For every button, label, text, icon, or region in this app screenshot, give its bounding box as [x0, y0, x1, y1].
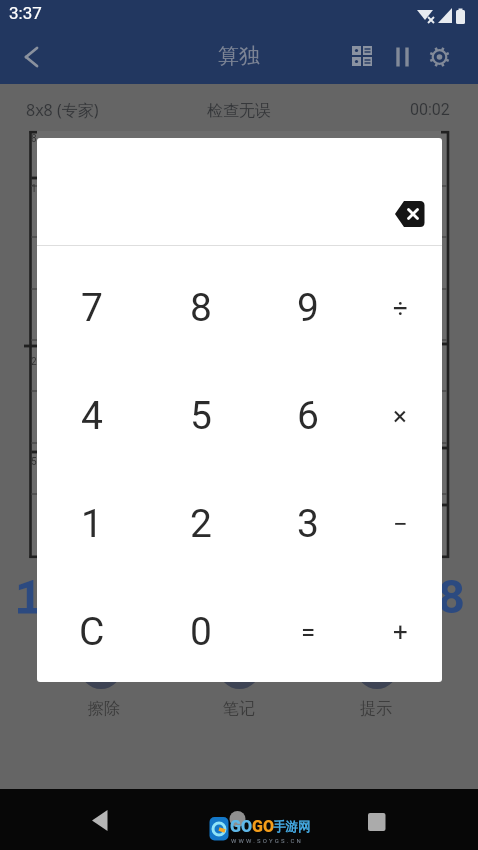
staticText: WWW.SOYGS.CN [231, 837, 304, 844]
button[interactable]: 2 [153, 476, 249, 572]
staticText: 2 [190, 501, 212, 547]
staticText: 2 [31, 356, 37, 368]
button[interactable] [11, 41, 51, 73]
staticText: = [301, 617, 316, 647]
button[interactable] [423, 41, 456, 73]
button[interactable] [388, 192, 432, 236]
button[interactable]: C [44, 584, 140, 680]
staticText: 0 [190, 609, 212, 655]
staticText: 8 [190, 285, 212, 331]
staticText: 9 [297, 285, 319, 331]
button[interactable] [356, 800, 400, 844]
button[interactable]: 7 [44, 260, 140, 356]
staticText: 1 [81, 501, 103, 547]
staticText: + [393, 617, 408, 647]
staticText: 笔记 [223, 699, 255, 719]
button[interactable]: = [260, 584, 356, 680]
button[interactable]: 6 [260, 368, 356, 464]
button[interactable]: 5 [153, 368, 249, 464]
staticText: 检查无误 [207, 101, 271, 121]
button[interactable] [346, 41, 378, 73]
button[interactable]: 0 [153, 584, 249, 680]
button[interactable]: + [352, 584, 442, 680]
staticText: 00:02 [410, 100, 450, 119]
button[interactable]: GO [205, 810, 315, 848]
button[interactable] [78, 800, 122, 844]
button[interactable]: 3 [260, 476, 356, 572]
button[interactable]: ÷ [352, 260, 442, 356]
button[interactable] [386, 41, 417, 73]
button[interactable]: 1 [44, 476, 140, 572]
button[interactable]: 8 [153, 260, 249, 356]
staticText: 8x8 (专家) [26, 99, 99, 121]
staticText: 4 [81, 393, 103, 439]
button[interactable]: − [352, 476, 442, 572]
staticText: C [79, 609, 105, 655]
staticText: 8 [31, 133, 37, 145]
staticText: 手游网 [273, 819, 311, 835]
staticText: 擦除 [88, 699, 120, 719]
staticText: GO [252, 817, 274, 836]
staticText: 5 [190, 393, 212, 439]
staticText: GO [230, 817, 252, 836]
staticText: 5 [31, 456, 37, 468]
staticText: ÷ [393, 293, 408, 323]
staticText: 算独 [218, 43, 260, 69]
staticText: 6 [297, 393, 319, 439]
staticText: − [393, 509, 408, 539]
button[interactable]: 9 [260, 260, 356, 356]
staticText: × [393, 401, 407, 431]
staticText: 提示 [360, 699, 392, 719]
staticText: 3:37 [9, 3, 42, 23]
staticText: 1 [31, 183, 37, 195]
button[interactable]: × [352, 368, 442, 464]
button[interactable]: 4 [44, 368, 140, 464]
staticText: 1 [15, 569, 42, 624]
staticText: 7 [81, 285, 103, 331]
staticText: 3 [297, 501, 319, 547]
staticText: 8 [438, 569, 465, 624]
